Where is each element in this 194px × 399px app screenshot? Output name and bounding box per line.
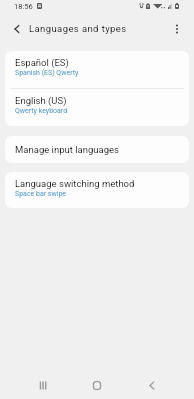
button[interactable]: Recents — [23, 372, 63, 399]
button[interactable]: Back — [132, 372, 172, 399]
staticText: English (US) — [15, 95, 67, 106]
button[interactable]: Español (ES) — [5, 51, 189, 88]
staticText: Español (ES) — [15, 57, 69, 68]
staticText: Spanish (ES) Qwerty — [15, 69, 79, 77]
button[interactable]: English (US) — [5, 89, 189, 126]
staticText: Language switching method — [15, 178, 135, 189]
button[interactable]: More options — [164, 16, 190, 42]
staticText: Manage input languages — [15, 144, 119, 155]
staticText: Space bar swipe — [15, 190, 67, 198]
button[interactable]: Language switching method — [5, 172, 189, 208]
button[interactable]: Manage input languages — [5, 136, 189, 163]
staticText: 18:56 — [14, 2, 33, 11]
button[interactable]: Navigate up — [4, 16, 30, 42]
button[interactable]: Home — [77, 372, 117, 399]
staticText: Languages and types — [29, 23, 127, 34]
staticText: Qwerty keyboard — [15, 107, 68, 115]
